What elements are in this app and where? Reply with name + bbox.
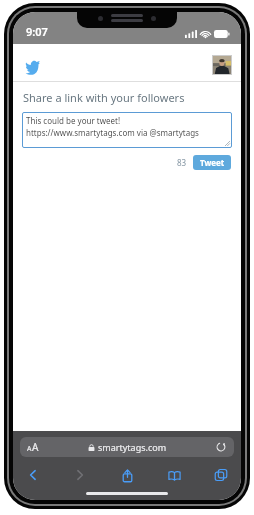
staticText: 83 <box>177 157 187 168</box>
staticText: A <box>27 444 32 454</box>
staticText: Tweet <box>200 157 225 168</box>
button[interactable]: Tweet <box>193 155 231 170</box>
button[interactable]: Bookmarks <box>163 464 185 486</box>
button[interactable]: This could be your tweet! <box>22 112 232 148</box>
button[interactable]: Forward <box>69 464 91 486</box>
staticText: https://www.smartytags.com via @smartyta… <box>26 127 199 138</box>
button[interactable]: Twitter <box>20 53 44 77</box>
button[interactable]: Back <box>22 464 44 486</box>
staticText: 9:07 <box>26 24 48 39</box>
other: Reload <box>215 441 227 453</box>
staticText: A <box>32 440 39 454</box>
button[interactable]: Share <box>116 464 138 486</box>
button[interactable]: Profile <box>210 53 234 77</box>
button[interactable]: A <box>20 437 234 457</box>
staticText: This could be your tweet! <box>26 115 121 126</box>
staticText: smartytags.com <box>98 441 167 453</box>
button[interactable]: Tabs <box>210 464 232 486</box>
staticText: Share a link with your followers <box>23 90 185 105</box>
